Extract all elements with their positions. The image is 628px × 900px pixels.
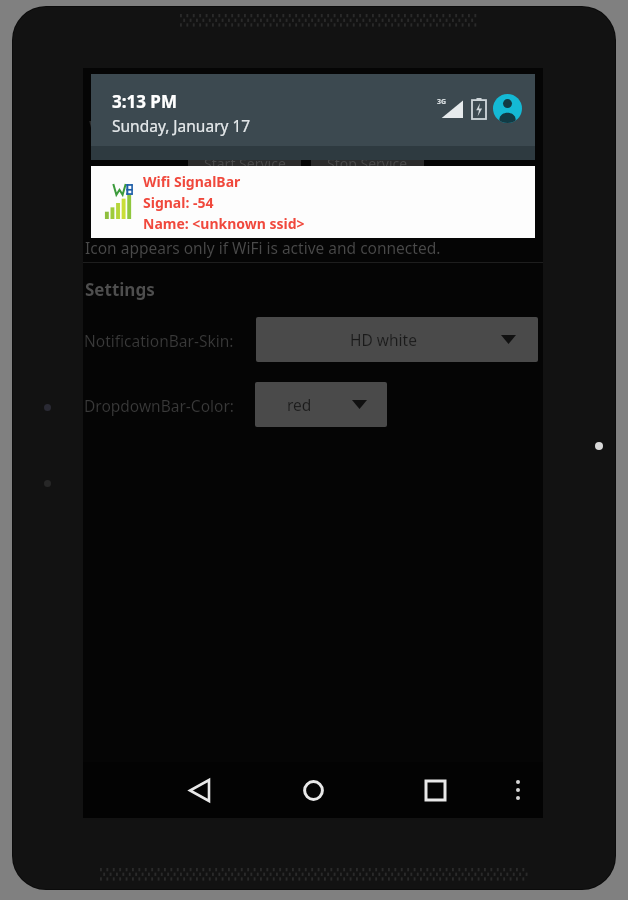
- other: Mobile signal 3G: [437, 98, 463, 118]
- staticText: Signal: -54: [143, 193, 214, 212]
- staticText: W: [89, 115, 105, 138]
- button[interactable]: Home: [275, 762, 351, 818]
- staticText: HD white: [350, 329, 417, 350]
- staticText: 3G: [437, 97, 447, 107]
- button[interactable]: Wifi SignalBar: [91, 166, 535, 238]
- button[interactable]: Start Service: [188, 146, 301, 180]
- staticText: Sunday, January 17: [112, 115, 251, 136]
- staticText: DropdownBar-Color:: [84, 395, 234, 416]
- button[interactable]: More options: [493, 762, 543, 818]
- other: Battery charging: [472, 98, 486, 119]
- staticText: Stop Service: [327, 154, 408, 173]
- staticText: Wifi SignalBar: [143, 172, 241, 191]
- button[interactable]: red: [255, 382, 387, 427]
- staticText: Start Service: [204, 154, 286, 173]
- button[interactable]: Recent apps: [397, 762, 473, 818]
- staticText: 3:13 PM: [112, 90, 177, 113]
- button[interactable]: User profile: [493, 94, 522, 123]
- button[interactable]: HD white: [256, 317, 538, 362]
- staticText: red: [287, 394, 312, 415]
- button[interactable]: Stop Service: [311, 146, 424, 180]
- staticText: Settings: [85, 278, 155, 301]
- staticText: Icon appears only if WiFi is active and …: [85, 237, 543, 258]
- staticText: Name: <unknown ssid>: [143, 214, 305, 233]
- button[interactable]: Back: [161, 762, 237, 818]
- staticText: NotificationBar-Skin:: [84, 330, 234, 351]
